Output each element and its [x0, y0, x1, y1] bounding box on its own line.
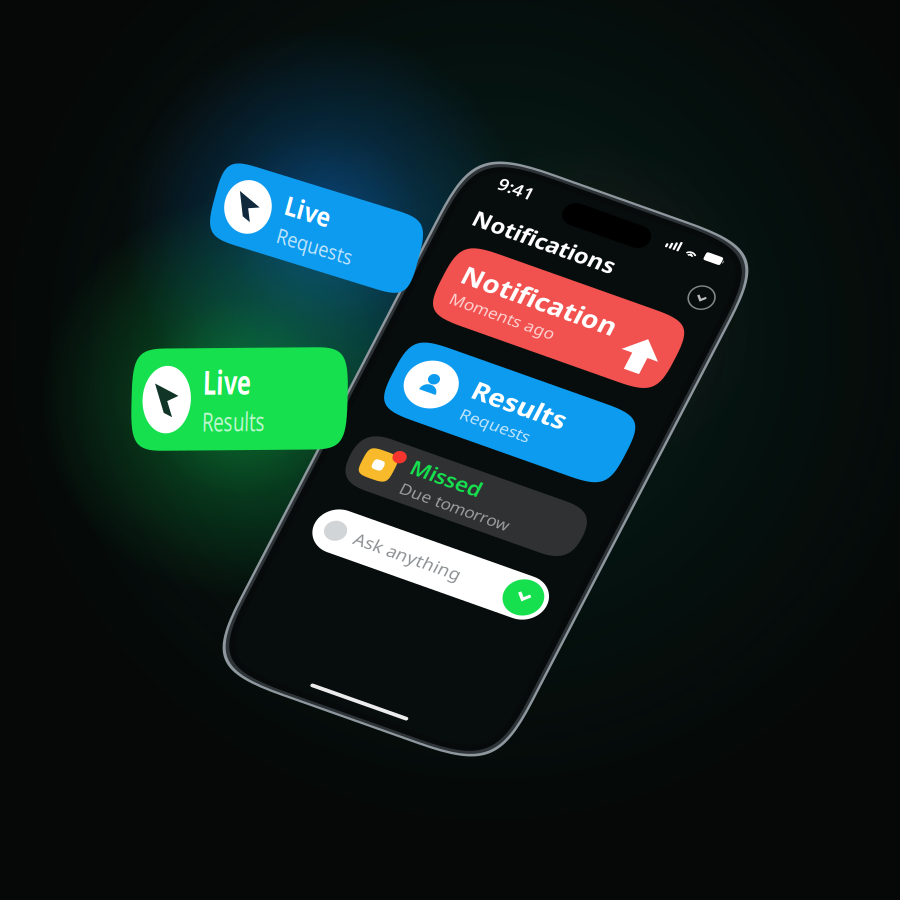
- button[interactable]: Ask anything: [33, 427, 287, 478]
- staticText: Missed: [95, 341, 171, 371]
- staticText: Requests: [115, 272, 190, 295]
- staticText: Results: [115, 234, 216, 272]
- staticText: Moments ago: [50, 155, 163, 178]
- button[interactable]: Notification: [33, 104, 287, 193]
- staticText: Notification: [50, 118, 217, 155]
- button[interactable]: Filter notifications: [263, 55, 300, 92]
- button[interactable]: Results: [33, 220, 287, 309]
- button[interactable]: Missed: [33, 336, 287, 399]
- staticText: Due tomorrow: [95, 371, 214, 394]
- staticText: Ask anything: [77, 440, 192, 465]
